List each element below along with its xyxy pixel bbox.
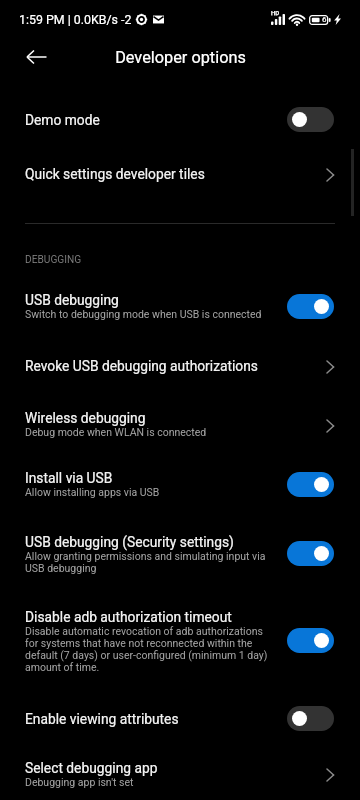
staticText: Debugging app isn't set <box>25 776 134 788</box>
staticText: Disable automatic revocation of adb auth… <box>25 625 268 673</box>
staticText: Select debugging app <box>25 760 158 776</box>
staticText: HD <box>271 9 280 16</box>
button[interactable]: Wireless debugging <box>0 410 360 440</box>
staticText: DEBUGGING <box>25 254 82 266</box>
button[interactable]: Enabled <box>287 541 334 566</box>
button[interactable]: Enabled <box>287 294 334 319</box>
button[interactable]: USB debugging (Security settings) <box>0 534 360 575</box>
button[interactable]: Enabled <box>287 472 334 497</box>
button[interactable]: Enabled <box>287 628 334 653</box>
button[interactable]: USB debugging <box>0 292 360 322</box>
staticText: Install via USB <box>25 470 113 486</box>
staticText: Switch to debugging mode when USB is con… <box>25 308 262 320</box>
button[interactable]: Disable adb authorization timeout <box>0 609 360 674</box>
button[interactable]: Disabled <box>287 107 334 132</box>
staticText: Disable adb authorization timeout <box>25 609 232 625</box>
button[interactable]: Navigate up <box>12 38 60 76</box>
staticText: Demo mode <box>25 112 100 128</box>
staticText: Wireless debugging <box>25 410 146 426</box>
staticText: Allow installing apps via USB <box>25 486 160 498</box>
staticText: USB debugging (Security settings) <box>25 534 234 550</box>
button[interactable]: Demo mode <box>0 112 360 128</box>
staticText: Enable viewing attributes <box>25 711 179 727</box>
staticText: Quick settings developer tiles <box>25 166 205 182</box>
button[interactable]: Quick settings developer tiles <box>0 166 360 182</box>
staticText: 6 <box>322 15 327 24</box>
staticText: Debug mode when WLAN is connected <box>25 426 207 438</box>
button[interactable]: Enable viewing attributes <box>0 711 360 727</box>
button[interactable]: Disabled <box>287 706 334 731</box>
button[interactable]: Select debugging app <box>0 760 360 788</box>
staticText: -2 <box>118 12 132 27</box>
button[interactable]: Install via USB <box>0 470 360 500</box>
staticText: Developer options <box>115 48 246 67</box>
staticText: 1:59 PM | 0.0KB/s <box>19 12 118 27</box>
staticText: USB debugging <box>25 292 119 308</box>
button[interactable]: Revoke USB debugging authorizations <box>0 358 360 374</box>
staticText: Allow granting permissions and simulatin… <box>25 550 266 574</box>
staticText: Revoke USB debugging authorizations <box>25 358 258 374</box>
